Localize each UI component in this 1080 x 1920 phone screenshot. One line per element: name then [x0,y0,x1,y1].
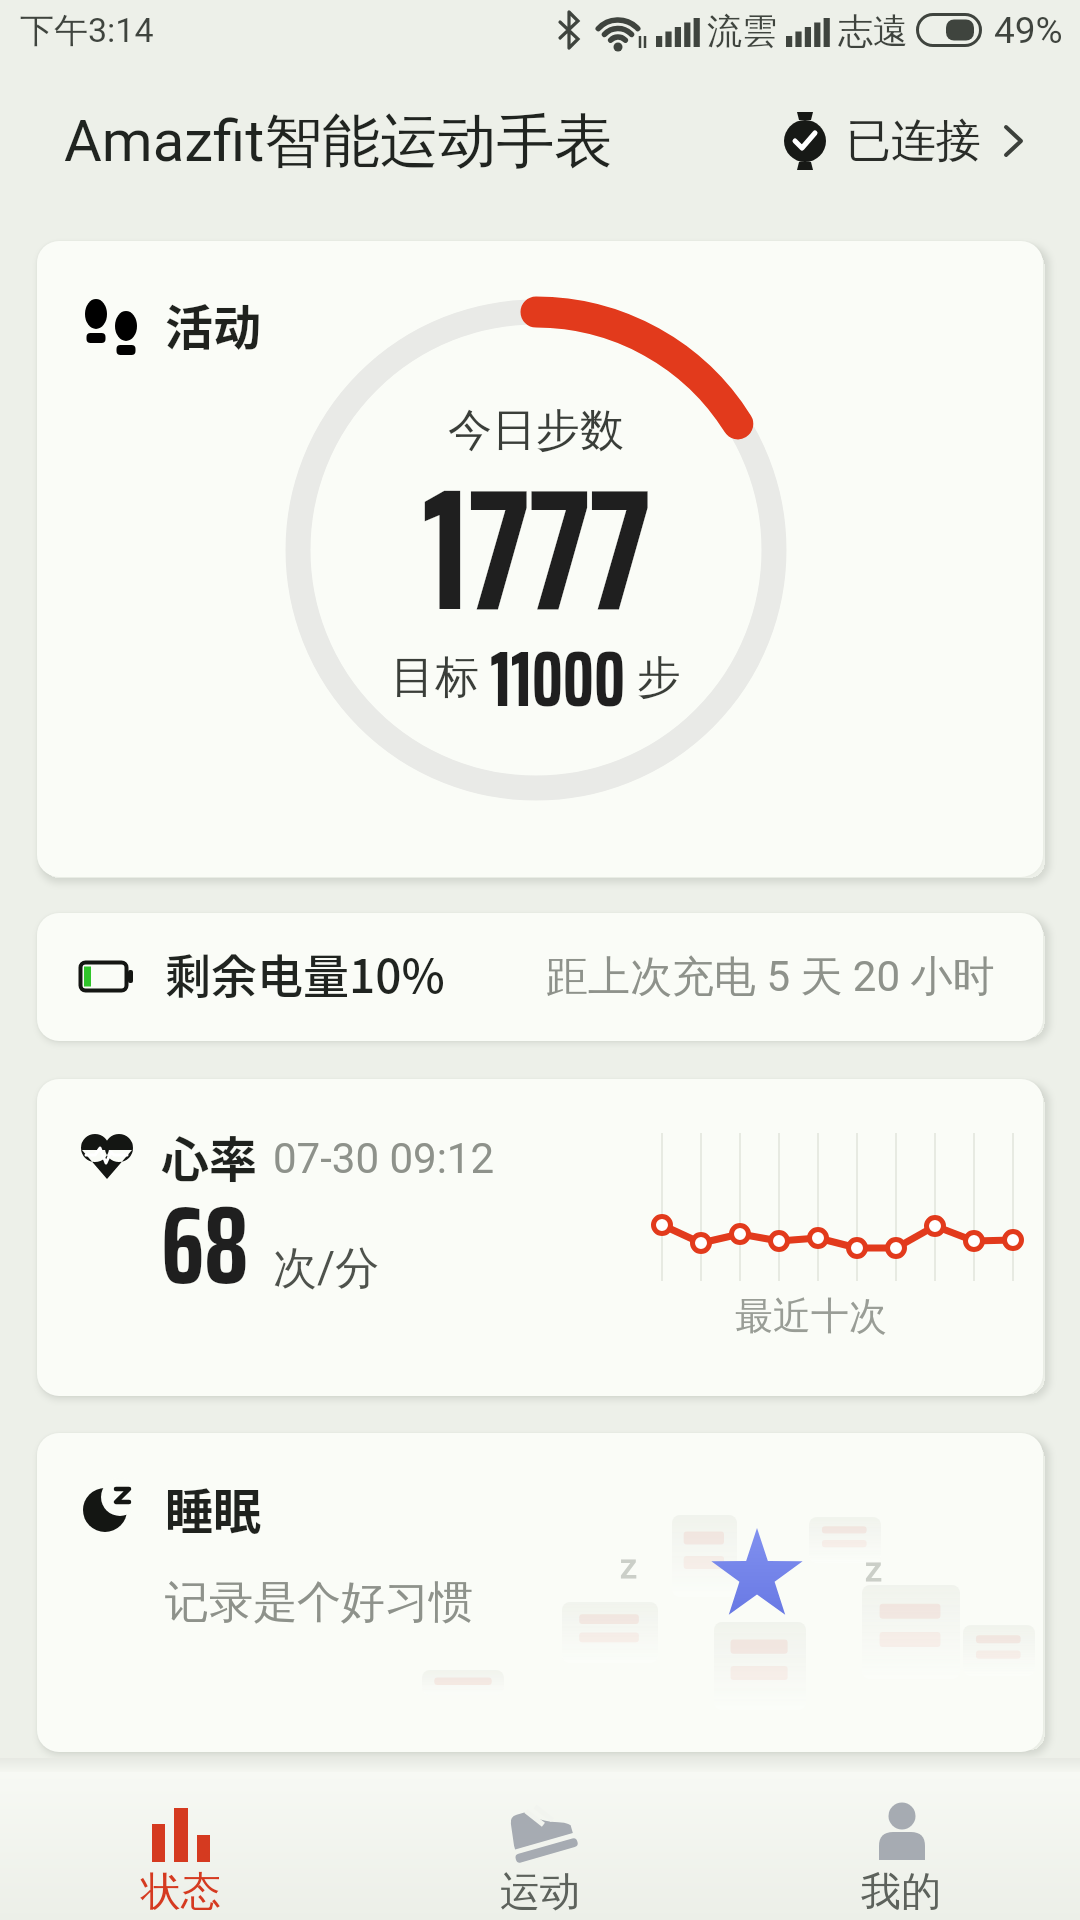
staticText: 下午3:14 [20,9,154,52]
staticText: 68 [161,1158,249,1331]
button[interactable]: 活动 [37,241,1043,877]
staticText: 记录是个好习惯 [165,1575,473,1630]
staticText: 心率 [161,1121,258,1191]
staticText: 睡眠 [165,1473,262,1543]
button[interactable] [61,1772,301,1920]
staticText: 剩余电量10% [165,940,445,1007]
staticText: 目标 [391,650,490,705]
button[interactable]: 睡眠 [37,1433,1043,1752]
staticText: z [865,1549,882,1589]
staticText: 今日步数 [448,403,624,458]
staticText: 状态 [141,1866,221,1916]
staticText: 志遠 [838,9,908,53]
staticText: 最近十次 [735,1292,887,1340]
staticText: Amazfit智能运动手表 [64,105,613,178]
button[interactable]: 剩余电量10% [37,913,1043,1041]
staticText: 次/分 [273,1241,380,1296]
staticText: 07-30 09:12 [273,1134,495,1183]
button[interactable] [420,1772,660,1920]
staticText: z [620,1546,637,1586]
staticText: 流雲 [707,9,777,53]
staticText: 已连接 [846,113,981,170]
staticText: 运动 [500,1866,580,1916]
button[interactable]: 心率 [37,1079,1043,1396]
staticText: 距上次充电 5 天 20 小时 [546,951,995,1004]
staticText: 活动 [165,289,262,359]
staticText: 1777 [422,414,650,685]
staticText: 11000 [490,617,626,737]
staticText: 我的 [861,1866,941,1916]
staticText: 49% [994,9,1063,52]
staticText: 步 [626,650,681,705]
button[interactable] [781,1772,1021,1920]
button[interactable]: 已连接 [782,95,1042,187]
